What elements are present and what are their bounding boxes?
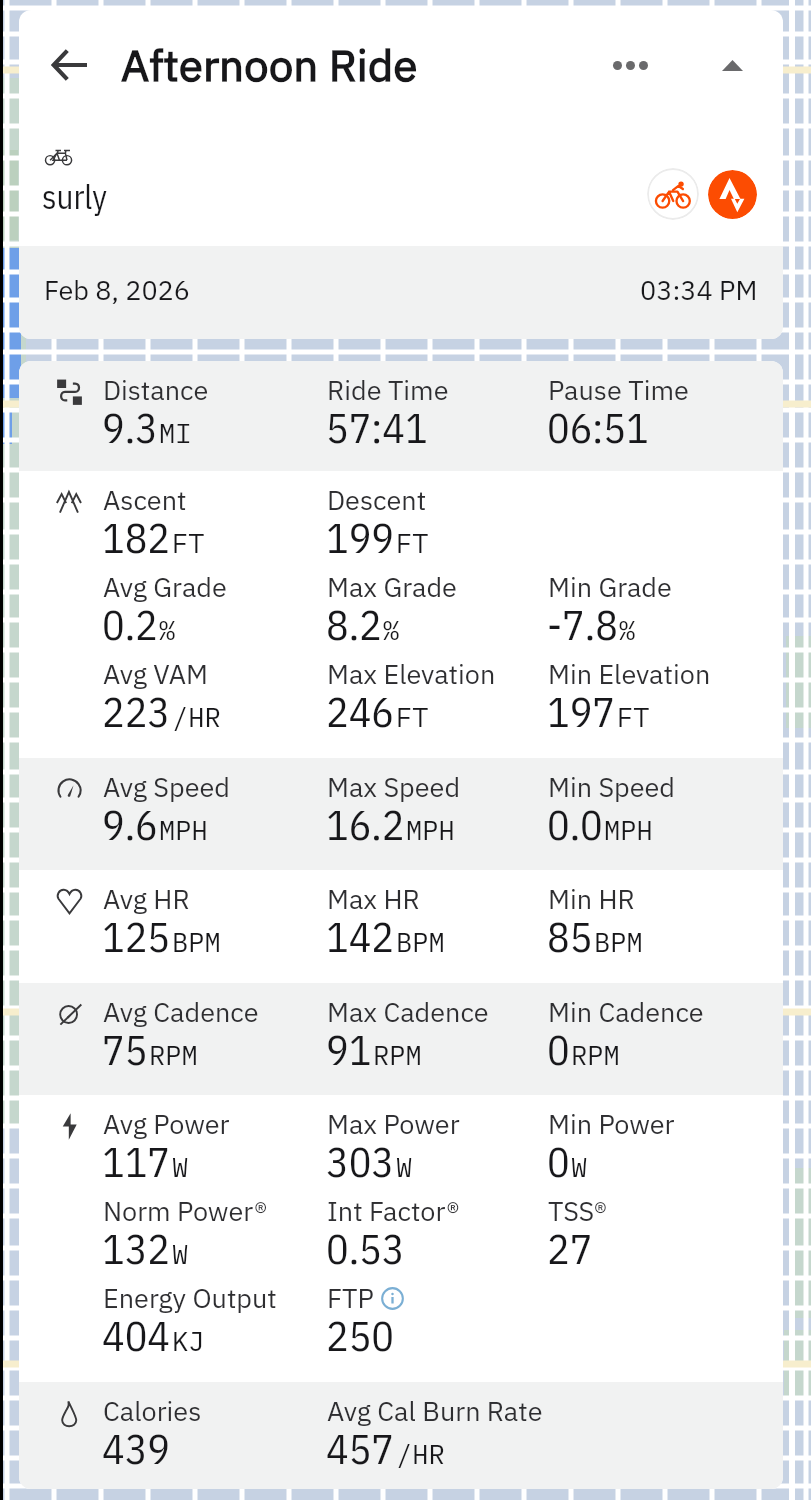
staticText: Avg Cal Burn Rate	[327, 1393, 543, 1428]
staticText: Avg Speed	[103, 769, 231, 804]
staticText: RPM	[149, 1037, 198, 1072]
button[interactable]: Collapse	[702, 35, 762, 95]
staticText: BPM	[396, 924, 445, 959]
staticText: W	[172, 1149, 189, 1184]
staticText: 16.2	[326, 797, 405, 852]
staticText: 182	[102, 510, 171, 565]
staticText: Calories	[103, 1393, 202, 1428]
button[interactable]: Cycling activity type	[647, 168, 699, 220]
staticText: BPM	[594, 924, 643, 959]
button[interactable]: Avg Speed	[19, 758, 783, 870]
staticText: Min Elevation	[548, 656, 711, 691]
staticText: RPM	[373, 1037, 422, 1072]
staticText: Max Speed	[327, 769, 461, 804]
staticText: Energy Output	[103, 1280, 277, 1315]
staticText: 250	[326, 1308, 395, 1363]
staticText: 246	[326, 684, 395, 739]
staticText: TSS®	[548, 1193, 607, 1228]
staticText: W	[172, 1236, 189, 1271]
staticText: 85	[547, 909, 593, 964]
staticText: 8.2	[326, 597, 382, 652]
staticText: Ascent	[103, 482, 187, 517]
staticText: 0.0	[547, 797, 603, 852]
staticText: 142	[326, 909, 395, 964]
button[interactable]: Feb 8, 2026	[19, 246, 783, 339]
staticText: %	[159, 612, 176, 647]
staticText: Distance	[103, 372, 209, 407]
staticText: Ride Time	[327, 372, 449, 407]
staticText: 27	[547, 1221, 593, 1276]
button[interactable]: Strava	[708, 170, 757, 219]
staticText: FTP	[327, 1280, 374, 1315]
staticText: 223	[102, 684, 171, 739]
staticText: Avg Grade	[103, 569, 227, 604]
button[interactable]: Avg Cadence	[19, 983, 783, 1095]
staticText: MI	[159, 415, 192, 450]
staticText: 197	[547, 684, 616, 739]
staticText: 03:34 PM	[640, 272, 758, 307]
staticText: Min Grade	[548, 569, 672, 604]
staticText: BPM	[172, 924, 221, 959]
staticText: MPH	[406, 812, 455, 847]
staticText: Max Grade	[327, 569, 457, 604]
staticText: 06:51	[547, 400, 649, 455]
staticText: W	[396, 1149, 413, 1184]
staticText: 0.2	[102, 597, 158, 652]
staticText: surly	[42, 175, 108, 218]
staticText: -7.8	[547, 597, 618, 652]
staticText: 303	[326, 1134, 395, 1189]
staticText: Max Cadence	[327, 994, 489, 1029]
staticText: /HR	[396, 1436, 445, 1471]
staticText: Max Power	[327, 1106, 460, 1141]
staticText: Descent	[327, 482, 427, 517]
staticText: 125	[102, 909, 171, 964]
staticText: Avg Cadence	[103, 994, 259, 1029]
staticText: Avg HR	[103, 881, 190, 916]
staticText: 457	[326, 1421, 395, 1476]
staticText: 0	[547, 1022, 570, 1077]
staticText: %	[383, 612, 400, 647]
staticText: RPM	[571, 1037, 620, 1072]
staticText: 132	[102, 1221, 171, 1276]
staticText: 439	[102, 1421, 171, 1476]
staticText: FT	[396, 525, 429, 560]
staticText: Norm Power®	[103, 1193, 268, 1228]
staticText: 117	[102, 1134, 171, 1189]
staticText: Min Cadence	[548, 994, 704, 1029]
staticText: FT	[396, 699, 429, 734]
button[interactable]: Calories	[19, 1382, 783, 1489]
staticText: 57:41	[326, 400, 428, 455]
staticText: 75	[102, 1022, 148, 1077]
staticText: MPH	[159, 812, 208, 847]
button[interactable]: Back	[39, 34, 101, 96]
staticText: Max Elevation	[327, 656, 496, 691]
staticText: Min Power	[548, 1106, 675, 1141]
staticText: FT	[172, 525, 205, 560]
staticText: Avg Power	[103, 1106, 230, 1141]
button[interactable]: Avg HR	[19, 870, 783, 983]
staticText: %	[619, 612, 636, 647]
staticText: Int Factor®	[327, 1193, 460, 1228]
staticText: MPH	[604, 812, 653, 847]
staticText: Max HR	[327, 881, 420, 916]
button[interactable]: Distance	[19, 361, 783, 471]
staticText: Min HR	[548, 881, 635, 916]
staticText: Avg VAM	[103, 656, 208, 691]
staticText: FT	[617, 699, 650, 734]
staticText: 9.6	[102, 797, 158, 852]
staticText: Feb 8, 2026	[44, 272, 190, 307]
staticText: 199	[326, 510, 395, 565]
staticText: Pause Time	[548, 372, 689, 407]
staticText: KJ	[172, 1323, 205, 1358]
staticText: 91	[326, 1022, 372, 1077]
staticText: W	[571, 1149, 588, 1184]
button[interactable]: More options	[600, 35, 660, 95]
staticText: /HR	[172, 699, 221, 734]
staticText: Min Speed	[548, 769, 676, 804]
staticText: 9.3	[102, 400, 158, 455]
staticText: Afternoon Ride	[121, 36, 418, 93]
staticText: 0	[547, 1134, 570, 1189]
staticText: 0.53	[326, 1221, 405, 1276]
button[interactable]: Avg Power	[19, 1095, 783, 1382]
button[interactable]: Ascent	[19, 471, 783, 758]
